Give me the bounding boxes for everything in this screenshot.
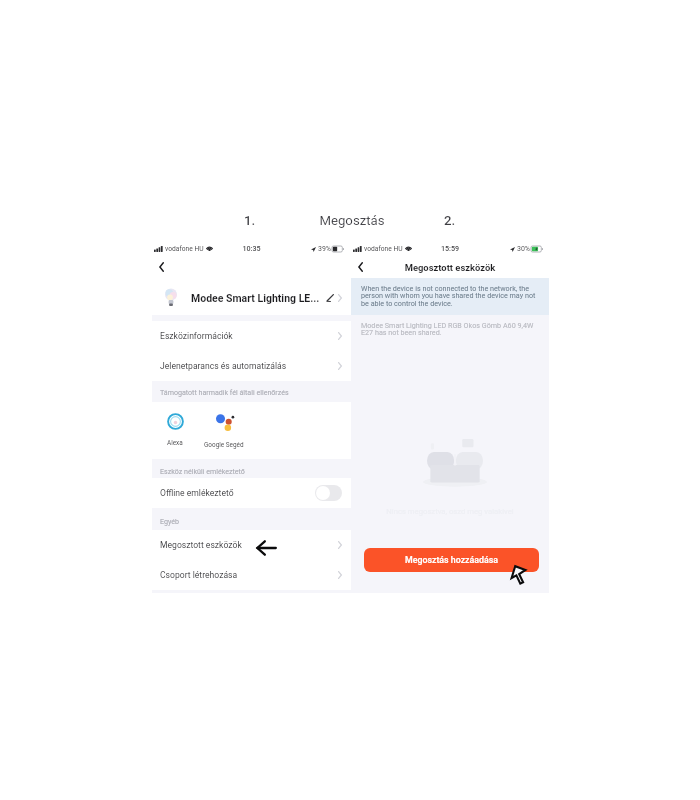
staticText: 39% [318, 245, 331, 253]
button[interactable]: Google Segéd [200, 413, 248, 449]
staticText: Eszközinformációk [160, 331, 233, 341]
staticText: 10:35 [152, 244, 351, 252]
staticText: When the device is not connected to the … [361, 284, 540, 308]
staticText: Modee Smart Lighting LED RGB Okos Gömb A… [361, 321, 540, 337]
button[interactable]: Megosztott eszközök [152, 530, 351, 560]
staticText: vodafone HU [165, 245, 204, 253]
staticText: 1. [229, 213, 270, 228]
button[interactable]: Offline reminder [315, 485, 342, 501]
staticText: Modee Smart Lighting LE... [191, 292, 320, 304]
staticText: 30% [517, 245, 530, 253]
staticText: Megosztott eszközök [160, 540, 242, 550]
button[interactable]: Megosztás hozzáadása [364, 548, 539, 572]
button[interactable]: Csoport létrehozása [152, 560, 351, 590]
staticText: Megosztás hozzáadása [405, 555, 499, 565]
button[interactable]: Eszközinformációk [152, 321, 351, 351]
button[interactable]: Modee Smart Lighting LE... [152, 280, 351, 315]
staticText: Támogatott harmadik fél általi ellenőrzé… [160, 388, 289, 396]
staticText: vodafone HU [364, 245, 403, 253]
staticText: Egyéb [160, 517, 180, 525]
staticText: 15:59 [351, 244, 549, 252]
staticText: Jelenetparancs és automatizálás [160, 361, 287, 371]
staticText: Google Segéd [204, 441, 244, 449]
button[interactable]: Jelenetparancs és automatizálás [152, 351, 351, 381]
staticText: 2. [429, 213, 470, 228]
button[interactable]: Back [351, 256, 369, 278]
button[interactable]: Alexa [151, 413, 199, 447]
staticText: Csoport létrehozása [160, 570, 238, 580]
staticText: Alexa [167, 439, 183, 447]
button[interactable]: Rename device [326, 294, 334, 302]
staticText: Megosztott eszközök [351, 262, 549, 273]
staticText: Offline emlékeztető [160, 488, 234, 498]
button[interactable]: Offline emlékeztető [152, 478, 351, 508]
staticText: Megosztás [302, 213, 402, 228]
staticText: Eszköz nélküli emlékeztető [160, 467, 245, 475]
button[interactable]: Back [152, 256, 170, 278]
other: Tap Add sharing [510, 565, 527, 586]
